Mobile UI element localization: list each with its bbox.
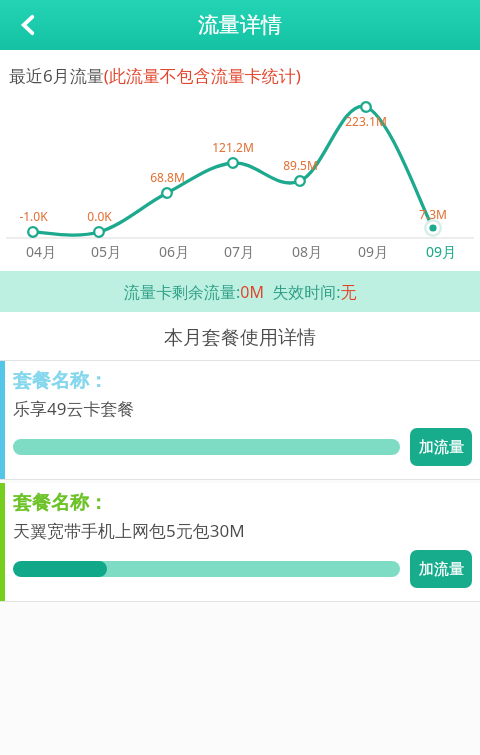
staticText: 套餐名称： bbox=[13, 491, 108, 515]
staticText: 09月 bbox=[426, 242, 457, 261]
staticText: 89.5M bbox=[283, 157, 318, 173]
staticText: 0.0K bbox=[87, 208, 112, 224]
staticText: 121.2M bbox=[212, 139, 254, 155]
staticText: 加流量 bbox=[419, 560, 464, 579]
staticText: 04月 bbox=[26, 242, 57, 261]
staticText: 68.8M bbox=[150, 169, 185, 185]
button[interactable]: 加流量 bbox=[410, 550, 472, 588]
staticText: 最近6月流量(此流量不包含流量卡统计) bbox=[9, 64, 301, 87]
staticText: 07月 bbox=[224, 242, 255, 261]
button[interactable]: 加流量 bbox=[410, 428, 472, 466]
staticText: 套餐名称： bbox=[13, 369, 108, 393]
staticText: 08月 bbox=[292, 242, 323, 261]
staticText: 06月 bbox=[159, 242, 190, 261]
staticText: 本月套餐使用详情 bbox=[164, 326, 316, 350]
button[interactable]: Back bbox=[6, 3, 50, 47]
staticText: 天翼宽带手机上网包5元包30M bbox=[13, 519, 245, 542]
staticText: 7.3M bbox=[419, 206, 447, 222]
staticText: 加流量 bbox=[419, 438, 464, 457]
staticText: 流量卡剩余流量:0M 失效时间:无 bbox=[124, 281, 357, 303]
staticText: 05月 bbox=[91, 242, 122, 261]
staticText: 223.1M bbox=[345, 113, 387, 129]
staticText: 乐享49云卡套餐 bbox=[13, 397, 135, 420]
staticText: -1.0K bbox=[19, 208, 48, 224]
staticText: 09月 bbox=[358, 242, 389, 261]
staticText: 流量详情 bbox=[198, 12, 282, 38]
